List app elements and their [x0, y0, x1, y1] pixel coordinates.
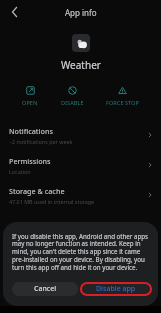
button[interactable]: DISABLE: [57, 84, 88, 109]
button[interactable]: OPEN: [18, 84, 42, 109]
button[interactable]: Notifications: [0, 120, 161, 150]
staticText: Weather: [61, 58, 101, 72]
staticText: Permissions: [9, 156, 51, 166]
staticText: DISABLE: [61, 99, 84, 107]
staticText: If you disable this app, Android and oth…: [12, 232, 149, 272]
button[interactable]: Back: [6, 3, 24, 21]
staticText: App info: [65, 7, 97, 18]
staticText: Location: [9, 168, 31, 175]
staticText: Notifications: [9, 126, 53, 136]
button[interactable]: FORCE STOP: [102, 84, 143, 109]
staticText: 47.01 MB used in internal storage: [9, 198, 95, 205]
button[interactable]: Cancel: [12, 282, 78, 296]
staticText: ~2 notifications per week: [9, 138, 73, 145]
button[interactable]: Disable app: [83, 282, 149, 296]
staticText: FORCE STOP: [106, 99, 139, 107]
staticText: Storage & cache: [9, 186, 65, 196]
button[interactable]: Storage & cache: [0, 180, 161, 210]
staticText: OPEN: [22, 99, 38, 107]
staticText: Cancel: [34, 284, 57, 294]
button[interactable]: Permissions: [0, 150, 161, 180]
staticText: Disable app: [96, 284, 136, 294]
